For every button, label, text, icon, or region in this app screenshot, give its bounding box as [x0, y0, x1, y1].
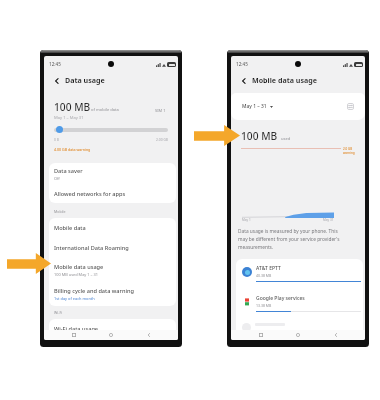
staticText: SIM 1	[155, 108, 166, 113]
staticText: Mobile data usage	[54, 263, 104, 271]
staticText: of mobile data	[91, 107, 119, 113]
staticText: Wi-Fi	[54, 310, 63, 315]
button[interactable]: Data saver	[49, 163, 176, 185]
staticText: Data usage is measured by your phone. Th…	[238, 228, 344, 251]
staticText: May 1	[242, 218, 251, 222]
staticText: 12:45	[236, 61, 248, 67]
staticText: International Data Roaming	[54, 244, 129, 252]
button[interactable]: Back	[141, 330, 157, 340]
staticText: May 1 – May 31	[54, 115, 84, 121]
staticText: 40.38 MB	[256, 273, 272, 278]
staticText: Data usage	[65, 75, 105, 85]
staticText: Mobile data usage	[252, 75, 317, 85]
button[interactable]: Recents	[66, 330, 82, 340]
staticText: Allowed networks for apps	[54, 190, 126, 198]
staticText: 1st day of each month	[54, 296, 95, 301]
button[interactable]: Home	[290, 330, 306, 340]
staticText: 12:45	[49, 61, 61, 67]
button[interactable]: Allowed networks for apps	[49, 185, 176, 203]
staticText: Billing cycle and data warning	[54, 287, 134, 295]
staticText: 4.00 GB data warning	[54, 147, 91, 152]
staticText: used	[281, 136, 291, 142]
staticText: Mobile data	[54, 224, 86, 232]
staticText: 13.38 MB	[256, 303, 272, 308]
staticText: May 31	[323, 218, 334, 222]
staticText: 100 MB used May 1 – 31	[54, 272, 98, 277]
staticText: 100 MB	[241, 129, 278, 143]
button[interactable]: Billing cycle and data warning	[49, 282, 176, 306]
staticText: warning	[343, 151, 355, 155]
staticText: Off	[54, 176, 60, 181]
button[interactable]: Settings	[345, 101, 356, 112]
button[interactable]: May 1 – 31	[242, 103, 273, 110]
staticText: Mobile	[54, 209, 66, 214]
button[interactable]: Back	[51, 75, 62, 86]
button[interactable]: Wi-Fi data usage	[49, 319, 176, 339]
staticText: 2.0 GB	[343, 147, 353, 151]
button[interactable]: International Data Roaming	[49, 238, 176, 258]
staticText: Wi-Fi data usage	[54, 325, 99, 333]
button[interactable]: Mobile data usage	[49, 258, 176, 282]
button[interactable]: Back	[238, 75, 249, 86]
staticText: Google Play services	[256, 295, 305, 302]
button[interactable]: Recents	[253, 330, 269, 340]
button[interactable]: Back	[328, 330, 344, 340]
button[interactable]: AT&T EPTT	[236, 259, 363, 289]
staticText: Data saver	[54, 167, 83, 175]
button[interactable]: Mobile data	[49, 218, 176, 238]
staticText: 100 MB	[54, 100, 91, 114]
button[interactable]: Google Play services	[236, 289, 363, 319]
staticText: 0 B	[54, 137, 59, 141]
staticText: May 1 – 31	[242, 103, 267, 110]
button[interactable]: Home	[103, 330, 119, 340]
staticText: 2.00 GB	[156, 137, 168, 141]
staticText: AT&T EPTT	[256, 265, 281, 272]
